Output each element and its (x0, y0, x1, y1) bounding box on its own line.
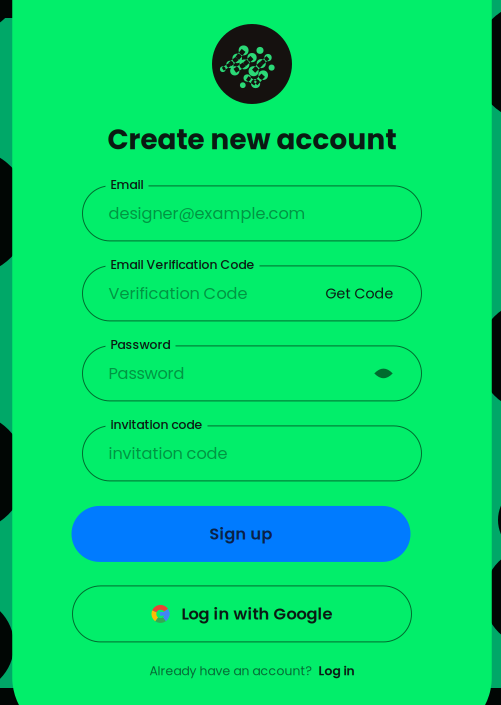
staticText: Email Verification Code (110, 256, 254, 273)
button[interactable]: Log in (318, 662, 354, 679)
staticText: designer@example.com (108, 202, 305, 225)
staticText: Password (108, 362, 184, 385)
staticText: Get Code (325, 283, 393, 303)
staticText: Sign up (209, 523, 272, 545)
button[interactable]: Log in with Google (72, 586, 411, 642)
staticText: Password (110, 336, 170, 353)
button[interactable]: Sign up (71, 506, 410, 562)
staticText: Log in with Google (181, 602, 332, 625)
staticText: Log in (318, 662, 354, 679)
staticText: invitation code (110, 416, 202, 433)
staticText: Already have an account? (149, 662, 311, 679)
staticText: Create new account (107, 120, 396, 159)
staticText: invitation code (108, 442, 227, 465)
staticText: Email (110, 176, 143, 193)
staticText: Verification Code (108, 282, 247, 305)
